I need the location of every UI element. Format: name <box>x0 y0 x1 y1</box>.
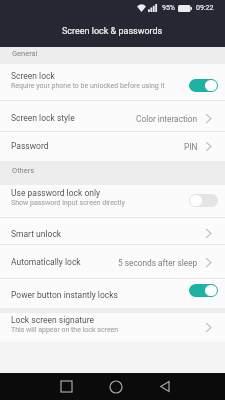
button[interactable] <box>189 79 218 92</box>
button[interactable]: Screen lock <box>0 64 225 101</box>
button[interactable] <box>189 284 218 297</box>
staticText: Screen lock style <box>11 113 75 123</box>
staticText: Show password input screen directly <box>11 199 125 207</box>
staticText: PIN <box>184 142 198 152</box>
staticText: Lock screen signature <box>11 315 95 325</box>
staticText: Automatically lock <box>11 257 81 267</box>
staticText: Use password lock only <box>11 188 101 198</box>
button[interactable]: Screen lock style <box>0 101 225 132</box>
staticText: Smart unlock <box>11 229 62 239</box>
button[interactable] <box>91 373 140 400</box>
staticText: Require your phone to be unlocked before… <box>11 82 165 90</box>
staticText: 09:22 <box>196 4 214 12</box>
button[interactable] <box>140 373 189 400</box>
staticText: Power button instantly locks <box>11 290 118 300</box>
staticText: General <box>12 49 38 58</box>
button[interactable] <box>42 373 91 400</box>
staticText: 5 seconds after sleep <box>118 258 198 268</box>
staticText: Others <box>12 166 35 175</box>
button[interactable]: Automatically lock <box>0 245 225 279</box>
staticText: Password <box>11 141 49 151</box>
button[interactable] <box>189 194 218 207</box>
button[interactable]: Lock screen signature <box>0 313 225 342</box>
button[interactable]: Password <box>0 132 225 161</box>
staticText: 95% <box>162 4 175 12</box>
staticText: Screen lock <box>11 71 55 81</box>
staticText: This will appear on the lock screen <box>11 326 119 334</box>
staticText: Color interaction <box>136 114 198 124</box>
button[interactable]: Smart unlock <box>0 218 225 245</box>
button[interactable]: Power button instantly locks <box>0 279 225 308</box>
staticText: Screen lock & passwords <box>62 26 163 37</box>
button[interactable]: Use password lock only <box>0 185 225 218</box>
